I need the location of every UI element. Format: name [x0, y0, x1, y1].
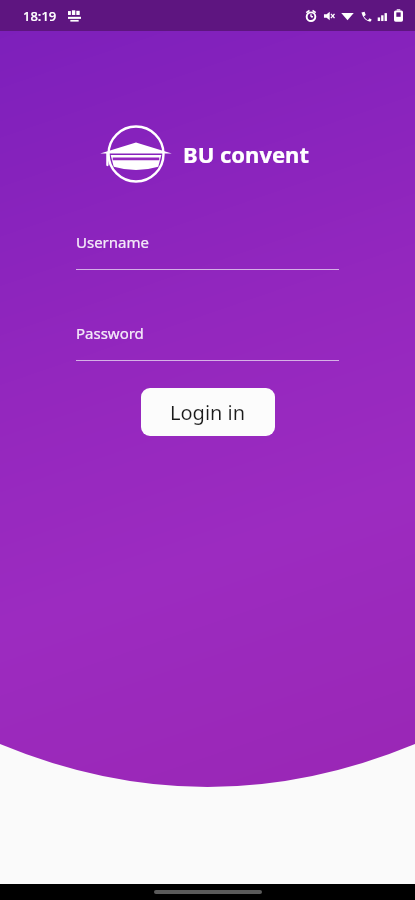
staticText: BU convent	[183, 139, 309, 169]
staticText: Login in	[170, 399, 246, 426]
other: BU convent logo	[107, 125, 165, 183]
button[interactable]: Username	[76, 232, 339, 270]
button[interactable]: Password	[76, 323, 339, 361]
staticText: 18:19	[23, 7, 57, 25]
staticText: Password	[76, 323, 144, 343]
button[interactable]: Login in	[141, 388, 275, 436]
staticText: Username	[76, 232, 149, 252]
